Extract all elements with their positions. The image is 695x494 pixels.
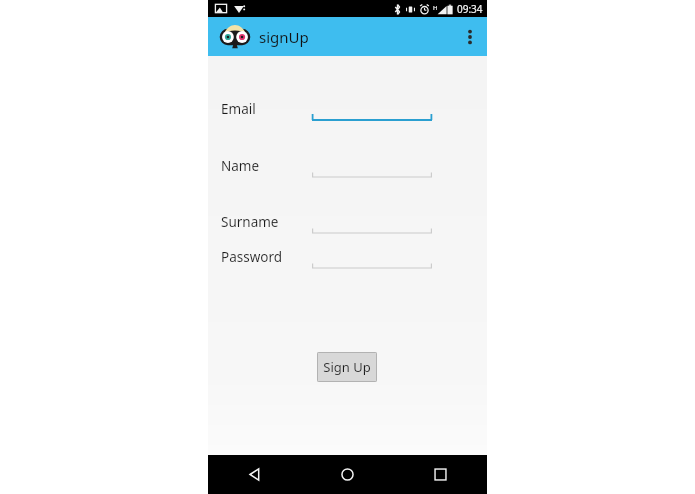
button[interactable]: Name input (312, 159, 432, 179)
staticText: Email (221, 100, 256, 118)
button[interactable]: Email input (312, 102, 432, 122)
staticText: signUp (259, 27, 309, 47)
button[interactable]: More options (453, 17, 487, 56)
staticText: Name (221, 157, 260, 175)
staticText: Sign Up (323, 358, 371, 376)
staticText: 09:34 (457, 2, 483, 16)
button[interactable]: Sign Up (317, 352, 377, 382)
button[interactable]: Password input (312, 250, 432, 270)
staticText: Surname (221, 213, 279, 231)
staticText: Password (221, 248, 283, 266)
staticText: H (433, 4, 438, 12)
button[interactable]: Surname input (312, 215, 432, 235)
button[interactable]: Recent apps (394, 455, 487, 494)
button[interactable]: Back (208, 455, 301, 494)
button[interactable]: Home (301, 455, 394, 494)
